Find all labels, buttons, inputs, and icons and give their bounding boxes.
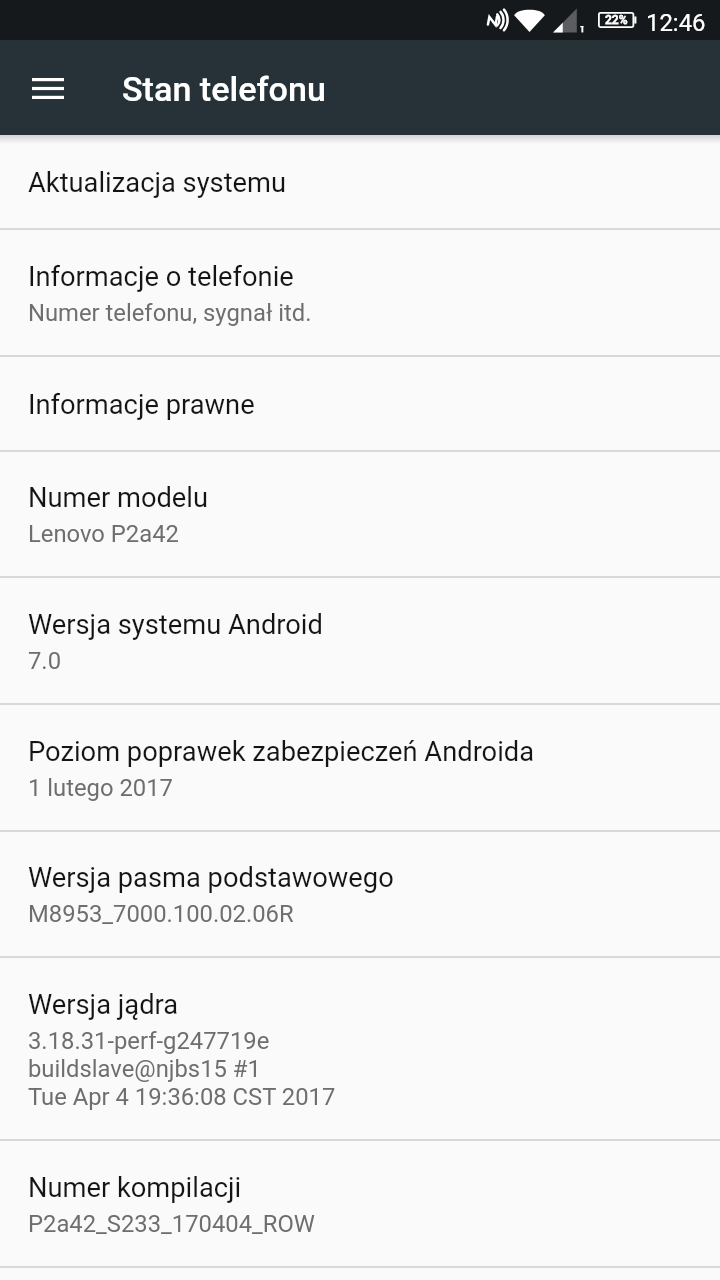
staticText: Lenovo P2a42 — [28, 520, 179, 548]
staticText: Informacje o telefonie — [28, 261, 294, 293]
button[interactable]: Aktualizacja systemu — [0, 135, 720, 230]
staticText: Stan telefonu — [122, 69, 326, 109]
button[interactable]: Numer kompilacji — [0, 1141, 720, 1268]
staticText: Numer kompilacji — [28, 1172, 242, 1204]
staticText: Tue Apr 4 19:36:08 CST 2017 — [28, 1083, 336, 1111]
staticText: 22% — [605, 13, 628, 27]
staticText: Wersja systemu Android — [28, 609, 323, 641]
staticText: 12:46 — [646, 9, 706, 37]
staticText: buildslave@njbs15 #1 — [28, 1055, 261, 1083]
staticText: Informacje prawne — [28, 389, 255, 421]
staticText: Poziom poprawek zabezpieczeń Androida — [28, 736, 535, 768]
staticText: P2a42_S233_170404_ROW — [28, 1210, 315, 1238]
staticText: 3.18.31-perf-g247719e — [28, 1027, 270, 1055]
button[interactable]: Wersja systemu Android — [0, 578, 720, 705]
staticText: Wersja pasma podstawowego — [28, 862, 394, 894]
button[interactable]: Informacje prawne — [0, 357, 720, 452]
button[interactable]: Wersja pasma podstawowego — [0, 832, 720, 958]
staticText: Wersja jądra — [28, 989, 179, 1021]
staticText: Aktualizacja systemu — [28, 167, 287, 199]
button[interactable]: Numer modelu — [0, 452, 720, 578]
staticText: 7.0 — [28, 647, 62, 675]
button[interactable]: Open navigation menu — [16, 56, 80, 120]
button[interactable]: Poziom poprawek zabezpieczeń Androida — [0, 705, 720, 832]
button[interactable]: Informacje o telefonie — [0, 230, 720, 357]
staticText: Numer modelu — [28, 482, 209, 514]
staticText: M8953_7000.100.02.06R — [28, 900, 294, 928]
staticText: 1 lutego 2017 — [28, 774, 173, 802]
button[interactable]: Wersja jądra — [0, 958, 720, 1141]
staticText: Numer telefonu, sygnał itd. — [28, 299, 312, 327]
